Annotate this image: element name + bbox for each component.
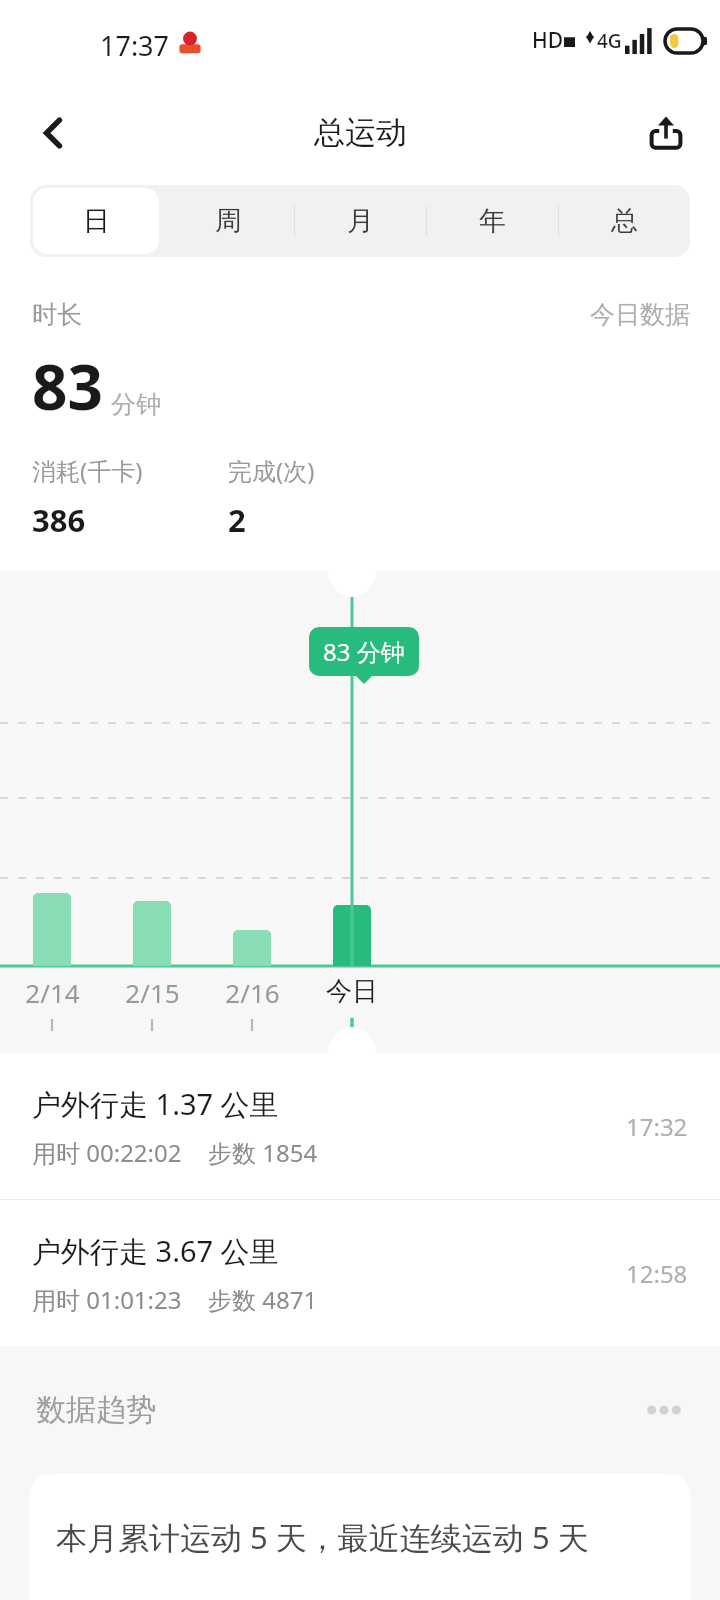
button[interactable]: More options <box>632 1378 696 1442</box>
staticText: 用时 01:01:23 <box>32 1283 182 1316</box>
staticText: 2/15 <box>125 975 180 1010</box>
button[interactable]: 日 <box>30 185 162 257</box>
button[interactable]: 户外行走 1.37 公里 <box>0 1053 720 1199</box>
staticText: 2/14 <box>25 975 80 1010</box>
staticText: HD <box>532 26 564 55</box>
staticText: 17:32 <box>626 1110 688 1143</box>
staticText: 12:58 <box>626 1257 688 1290</box>
button[interactable]: Share <box>634 101 698 165</box>
staticText: 4G <box>597 28 622 54</box>
staticText: 83 <box>32 344 103 428</box>
staticText: 83 分钟 <box>323 635 405 668</box>
staticText: 用时 00:22:02 <box>32 1136 182 1169</box>
staticText: 17:37 <box>100 27 170 64</box>
staticText: 步数 1854 <box>208 1136 318 1169</box>
staticText: 今日 <box>326 975 378 1008</box>
staticText: 户外行走 3.67 公里 <box>32 1231 279 1271</box>
staticText: 数据趋势 <box>36 1391 156 1429</box>
staticText: 今日数据 <box>590 299 690 330</box>
button[interactable]: 周 <box>162 185 294 257</box>
staticText: 386 <box>32 499 86 541</box>
staticText: 2 <box>228 499 246 541</box>
button[interactable]: 月 <box>294 185 426 257</box>
staticText: 日 <box>83 204 110 238</box>
staticText: 总 <box>611 204 638 238</box>
button[interactable]: 户外行走 3.67 公里 <box>0 1200 720 1346</box>
button[interactable]: Back <box>22 101 86 165</box>
staticText: 户外行走 1.37 公里 <box>32 1084 279 1124</box>
staticText: 周 <box>215 204 242 238</box>
staticText: 年 <box>479 204 506 238</box>
staticText: 步数 4871 <box>208 1283 318 1316</box>
staticText: 总运动 <box>314 113 407 152</box>
staticText: 完成(次) <box>228 454 315 487</box>
staticText: 分钟 <box>111 389 161 420</box>
staticText: 月 <box>347 204 374 238</box>
staticText: 时长 <box>32 299 82 330</box>
staticText: 2/16 <box>225 975 280 1010</box>
button[interactable]: 总 <box>558 185 690 257</box>
staticText: 消耗(千卡) <box>32 454 143 487</box>
staticText: 本月累计运动 5 天，最近连续运动 5 天 <box>56 1516 589 1558</box>
button[interactable]: 年 <box>426 185 558 257</box>
